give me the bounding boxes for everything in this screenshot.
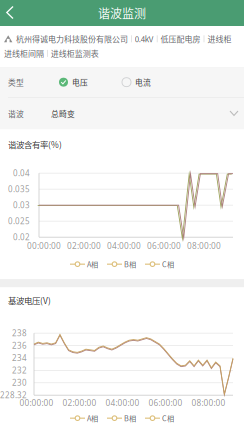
staticText: 08:00:00 (187, 240, 221, 251)
staticText: 电压 (72, 77, 88, 88)
staticText: 02:00:00 (67, 240, 101, 251)
button[interactable]: 进线柜监测表 (51, 48, 99, 59)
staticText: 基波电压(V) (8, 294, 51, 306)
staticText: 00:00:00 (27, 240, 61, 251)
staticText: 08:00:00 (191, 397, 225, 408)
staticText: 低压配电房 (161, 33, 201, 45)
staticText: 0.035 (8, 184, 30, 195)
staticText: 06:00:00 (147, 240, 181, 251)
staticText: 232 (12, 365, 27, 376)
staticText: 00:00:00 (19, 397, 53, 408)
button[interactable]: 0.4kV (135, 33, 154, 45)
staticText: 杭州得诚电力科技股份有限公司 (16, 33, 128, 45)
staticText: 0.02 (13, 232, 30, 243)
button[interactable]: 谐波 (0, 98, 244, 129)
button[interactable]: 进线柜 (207, 33, 231, 45)
button[interactable]: 低压配电房 (161, 33, 201, 45)
button[interactable]: A相 (70, 413, 98, 423)
button[interactable]: 返回 (0, 0, 24, 26)
staticText: 0.025 (8, 216, 30, 227)
staticText: A相 (87, 259, 98, 269)
staticText: 类型 (8, 77, 24, 88)
staticText: 238 (12, 328, 27, 339)
staticText: 04:00:00 (105, 397, 139, 408)
staticText: 06:00:00 (148, 397, 182, 408)
staticText: 进线柜监测表 (51, 48, 99, 59)
staticText: 进线柜间隔 (4, 48, 44, 59)
staticText: 228.32 (0, 390, 27, 401)
staticText: 234 (12, 352, 27, 363)
button[interactable]: C相 (145, 259, 174, 269)
button[interactable]: 电压 (59, 70, 122, 94)
staticText: 0.04 (13, 168, 30, 179)
staticText: 进线柜 (207, 33, 231, 45)
staticText: C相 (162, 259, 174, 269)
staticText: 总畸变 (51, 108, 75, 119)
staticText: 230 (12, 377, 27, 388)
staticText: B相 (124, 413, 136, 423)
staticText: C相 (162, 413, 174, 423)
staticText: 04:00:00 (107, 240, 141, 251)
staticText: B相 (124, 259, 136, 269)
staticText: 02:00:00 (62, 397, 96, 408)
button[interactable]: 进线柜间隔 (4, 48, 44, 59)
staticText: 电流 (135, 77, 151, 88)
staticText: A相 (87, 413, 98, 423)
staticText: 谐波含有率(%) (8, 138, 62, 150)
button[interactable]: B相 (107, 259, 136, 269)
staticText: 0.4kV (135, 33, 154, 45)
button[interactable]: C相 (145, 413, 174, 423)
button[interactable]: B相 (107, 413, 136, 423)
button[interactable]: 电流 (122, 70, 182, 94)
staticText: 谐波 (8, 108, 24, 119)
button[interactable]: 杭州得诚电力科技股份有限公司 (16, 33, 128, 45)
staticText: 0.03 (13, 200, 30, 211)
button[interactable]: A相 (70, 259, 98, 269)
staticText: 236 (12, 340, 27, 351)
staticText: 谐波监测 (98, 4, 146, 22)
